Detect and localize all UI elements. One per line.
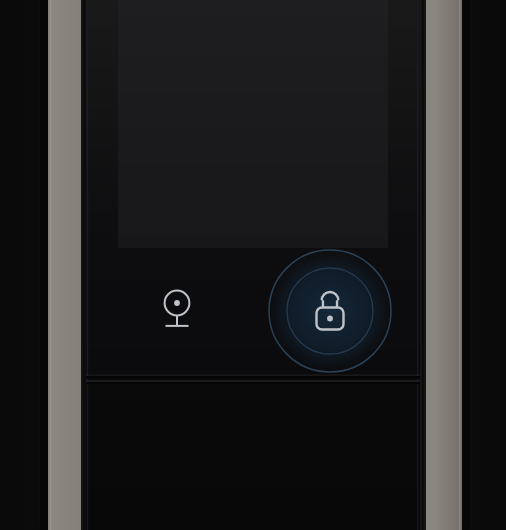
button[interactable]: Lock bbox=[262, 243, 398, 379]
button[interactable]: Camera bbox=[149, 275, 205, 331]
